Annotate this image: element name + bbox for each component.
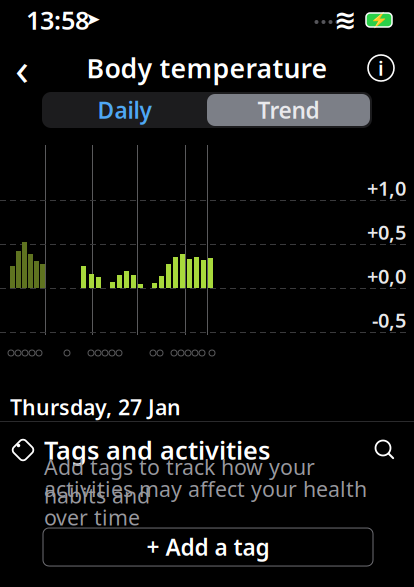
staticText: Body temperature <box>86 50 327 86</box>
staticText: Daily <box>97 95 151 125</box>
staticText: -0,5 <box>372 307 406 333</box>
button[interactable]: Search tags <box>363 428 407 472</box>
staticText: ≋ <box>334 5 356 35</box>
staticText: +0,0 <box>367 263 406 289</box>
staticText: Trend <box>257 95 319 125</box>
staticText: +1,0 <box>367 175 406 201</box>
staticText: +0,5 <box>367 219 406 245</box>
staticText: ‹ <box>15 38 29 98</box>
staticText: Add tags to track how your habits and <box>44 453 315 509</box>
button[interactable]: Trend <box>207 94 370 126</box>
staticText: ⚡ <box>370 12 388 28</box>
button[interactable]: Daily <box>42 92 207 128</box>
staticText: activities may affect your health over t… <box>44 475 367 531</box>
button[interactable]: Back <box>0 46 44 90</box>
button[interactable]: + Add a tag <box>43 528 373 566</box>
staticText: Thursday, 27 Jan <box>10 393 181 421</box>
staticText: 13:58 <box>26 3 89 37</box>
staticText: i <box>378 55 384 81</box>
staticText: + Add a tag <box>146 532 269 562</box>
button[interactable]: Info <box>359 46 403 90</box>
staticText: Tags and activities <box>44 433 270 467</box>
staticText: ➤ <box>85 8 101 30</box>
